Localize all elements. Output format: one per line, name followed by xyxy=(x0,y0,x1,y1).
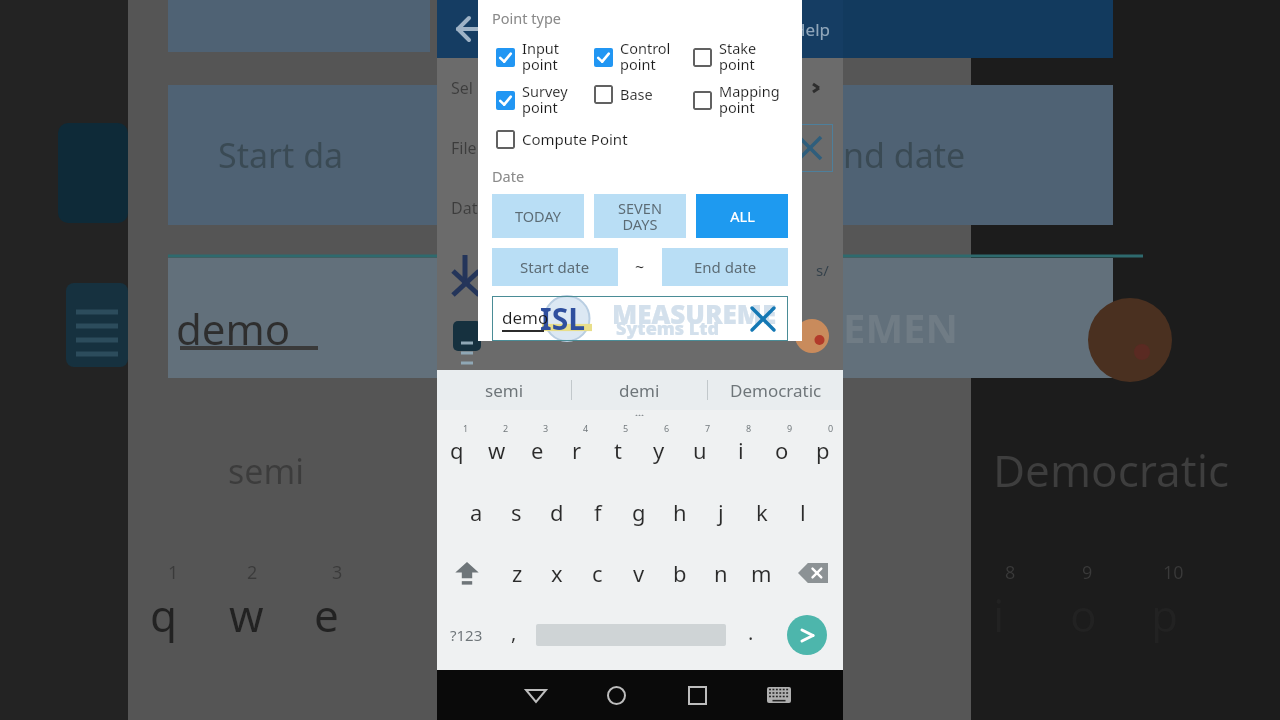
staticText: MEASUREMENT xyxy=(612,296,788,335)
staticText: 8 xyxy=(746,422,752,434)
button[interactable]: Home xyxy=(576,670,657,720)
staticText: 4 xyxy=(583,422,589,434)
staticText: demo xyxy=(502,306,549,329)
staticText: 1 xyxy=(463,422,469,434)
staticText: semi xyxy=(228,448,305,494)
button[interactable]: 1 xyxy=(437,420,477,481)
button[interactable]: 7 xyxy=(679,420,720,481)
staticText: q xyxy=(150,585,178,645)
button[interactable]: ?123 xyxy=(437,604,496,666)
staticText: demi xyxy=(619,379,660,402)
button[interactable]: Help xyxy=(793,18,831,41)
button[interactable]: . xyxy=(730,604,771,666)
staticText: 3 xyxy=(543,422,549,434)
staticText: w xyxy=(229,585,264,645)
button[interactable]: Mapping point xyxy=(689,81,788,118)
staticText: 0 xyxy=(828,422,834,434)
button[interactable]: 8 xyxy=(720,420,761,481)
button[interactable]: demi xyxy=(572,370,707,410)
button[interactable]: j xyxy=(700,481,741,542)
staticText: nd date xyxy=(843,132,966,178)
staticText: u xyxy=(693,435,707,465)
staticText: File xyxy=(451,137,477,159)
button[interactable]: 9 xyxy=(761,420,802,481)
button[interactable]: Stake point xyxy=(689,38,788,75)
button[interactable]: l xyxy=(782,481,823,542)
staticText: f xyxy=(594,497,602,527)
button[interactable]: Space xyxy=(532,604,730,666)
staticText: k xyxy=(756,497,768,527)
staticText: e xyxy=(314,585,339,645)
button[interactable]: Survey point xyxy=(492,81,590,118)
staticText: t xyxy=(614,435,622,465)
button[interactable]: Switch keyboard xyxy=(738,670,819,720)
button[interactable]: SEVEN DAYS xyxy=(594,194,686,238)
staticText: ISL xyxy=(540,298,585,339)
staticText: p xyxy=(816,435,830,465)
button[interactable]: 5 xyxy=(597,420,638,481)
button[interactable]: Clear text xyxy=(752,308,774,330)
button[interactable]: Base xyxy=(590,81,689,107)
button[interactable]: n xyxy=(700,542,741,604)
button[interactable]: 4 xyxy=(557,420,597,481)
button[interactable]: 0 xyxy=(802,420,843,481)
button[interactable]: f xyxy=(577,481,618,542)
button[interactable]: x xyxy=(537,542,577,604)
button[interactable]: h xyxy=(659,481,700,542)
staticText: Control point xyxy=(620,38,671,75)
button[interactable]: demo xyxy=(492,296,788,341)
button[interactable]: 6 xyxy=(638,420,679,481)
staticText: x xyxy=(551,558,563,588)
staticText: q xyxy=(450,435,464,465)
staticText: 9 xyxy=(1082,560,1093,585)
button[interactable]: ALL xyxy=(696,194,788,238)
button[interactable]: m xyxy=(741,542,782,604)
button[interactable]: Back xyxy=(495,670,576,720)
button[interactable]: Control point xyxy=(590,38,689,75)
staticText: l xyxy=(800,497,806,527)
staticText: Survey point xyxy=(522,81,568,118)
button[interactable]: b xyxy=(659,542,700,604)
button[interactable]: Backspace xyxy=(782,542,843,604)
button[interactable]: Input point xyxy=(492,38,590,75)
staticText: c xyxy=(592,558,603,588)
staticText: SEVEN DAYS xyxy=(618,198,662,234)
button[interactable]: Recent apps xyxy=(657,670,738,720)
staticText: Date xyxy=(492,166,525,186)
staticText: g xyxy=(632,497,646,527)
button[interactable]: semi xyxy=(437,370,571,410)
button[interactable]: End date xyxy=(662,248,788,286)
button[interactable]: v xyxy=(618,542,659,604)
staticText: b xyxy=(673,558,687,588)
staticText: demo xyxy=(176,300,291,357)
button[interactable]: k xyxy=(741,481,782,542)
staticText: v xyxy=(633,558,645,588)
staticText: . xyxy=(748,619,754,646)
staticText: EMEN xyxy=(843,300,959,354)
button[interactable]: Enter xyxy=(771,604,843,666)
button[interactable]: z xyxy=(497,542,537,604)
button[interactable]: d xyxy=(536,481,577,542)
button[interactable]: g xyxy=(618,481,659,542)
button[interactable]: a xyxy=(456,481,496,542)
button[interactable]: Democratic xyxy=(708,370,843,410)
staticText: o xyxy=(775,435,789,465)
staticText: 2 xyxy=(247,560,258,585)
button[interactable]: TODAY xyxy=(492,194,584,238)
staticText: Sytems Ltd xyxy=(616,316,720,341)
staticText: Compute Point xyxy=(522,129,628,149)
staticText: h xyxy=(673,497,687,527)
staticText: r xyxy=(572,435,582,465)
button[interactable]: Back xyxy=(445,5,493,53)
button[interactable]: , xyxy=(496,604,532,666)
button[interactable]: 3 xyxy=(517,420,557,481)
button[interactable]: Shift xyxy=(437,542,497,604)
button[interactable]: Start date xyxy=(492,248,618,286)
staticText: d xyxy=(550,497,564,527)
staticText: i xyxy=(738,435,744,465)
button[interactable]: s xyxy=(496,481,536,542)
button[interactable]: 2 xyxy=(477,420,517,481)
button[interactable]: Compute Point xyxy=(492,126,788,152)
button[interactable]: c xyxy=(577,542,618,604)
